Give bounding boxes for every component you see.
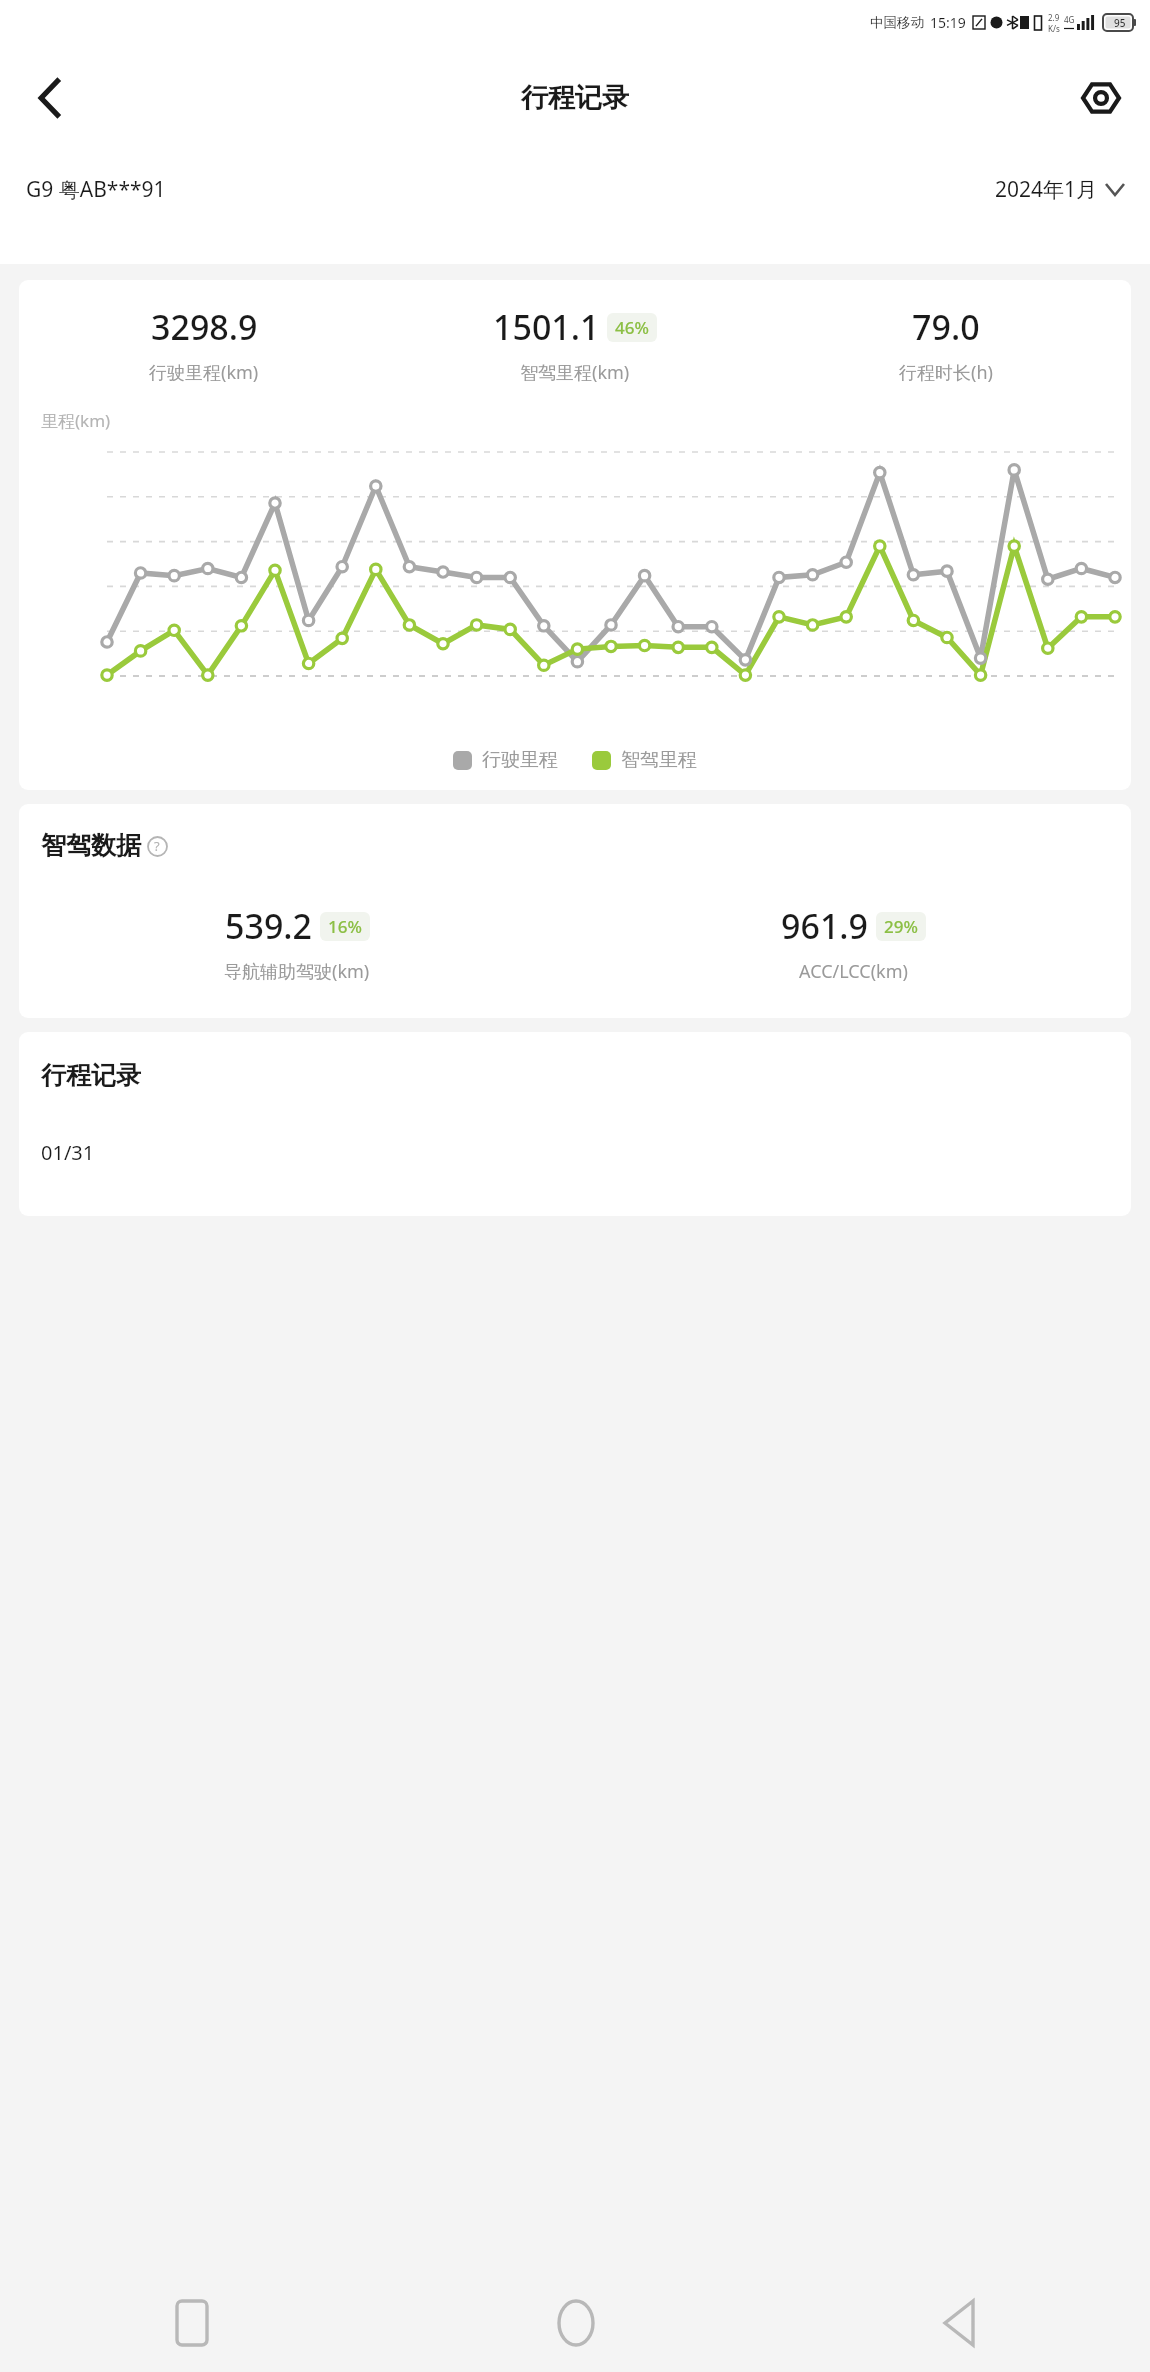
button[interactable]: Settings xyxy=(1070,67,1132,129)
staticText: 16% xyxy=(328,915,362,938)
staticText: 行驶里程 xyxy=(482,748,558,772)
staticText: 3298.9 xyxy=(151,304,258,350)
button[interactable]: G9 粤AB***91 xyxy=(26,175,166,204)
staticText: ACC/LCC(km) xyxy=(799,959,908,984)
staticText: 智驾里程(km) xyxy=(520,360,630,385)
staticText: 4G xyxy=(1064,14,1075,25)
button[interactable]: Recents xyxy=(0,2274,384,2372)
button[interactable]: 智驾里程 xyxy=(592,748,697,772)
staticText: 智驾数据 xyxy=(41,830,141,861)
button[interactable]: 3298.9 xyxy=(19,280,1131,790)
staticText: 行程记录 xyxy=(521,81,629,115)
staticText: 15:19 xyxy=(930,13,966,32)
button[interactable]: Back xyxy=(18,67,80,129)
staticText: 行驶里程(km) xyxy=(149,360,259,385)
staticText: 539.2 xyxy=(225,903,313,949)
button[interactable]: Home xyxy=(384,2274,767,2372)
button[interactable]: Back xyxy=(767,2274,1150,2372)
staticText: K/s xyxy=(1048,23,1060,34)
staticText: 2.9 xyxy=(1048,12,1060,23)
staticText: ? xyxy=(154,837,160,855)
staticText: 46% xyxy=(615,316,649,339)
button[interactable]: Info xyxy=(145,834,169,858)
staticText: 2024年1月 xyxy=(995,175,1098,204)
staticText: 智驾里程 xyxy=(621,748,697,772)
staticText: 中国移动 xyxy=(870,14,924,31)
staticText: 95 xyxy=(1114,16,1126,30)
staticText: 1501.1 xyxy=(493,304,600,350)
staticText: G9 粤AB***91 xyxy=(26,175,166,204)
staticText: 01/31 xyxy=(41,1139,95,1166)
staticText: 29% xyxy=(884,915,918,938)
staticText: 里程(km) xyxy=(41,409,111,432)
staticText: 导航辅助驾驶(km) xyxy=(224,959,370,984)
staticText: 行程记录 xyxy=(41,1060,141,1091)
button[interactable]: 2024年1月 xyxy=(995,175,1124,204)
staticText: 79.0 xyxy=(912,304,980,350)
staticText: 行程时长(h) xyxy=(899,360,993,385)
button[interactable]: 行驶里程 xyxy=(453,748,558,772)
staticText: 961.9 xyxy=(781,903,869,949)
button[interactable]: 行程记录 xyxy=(19,1032,1131,1216)
button[interactable]: 智驾数据 xyxy=(19,804,1131,1018)
